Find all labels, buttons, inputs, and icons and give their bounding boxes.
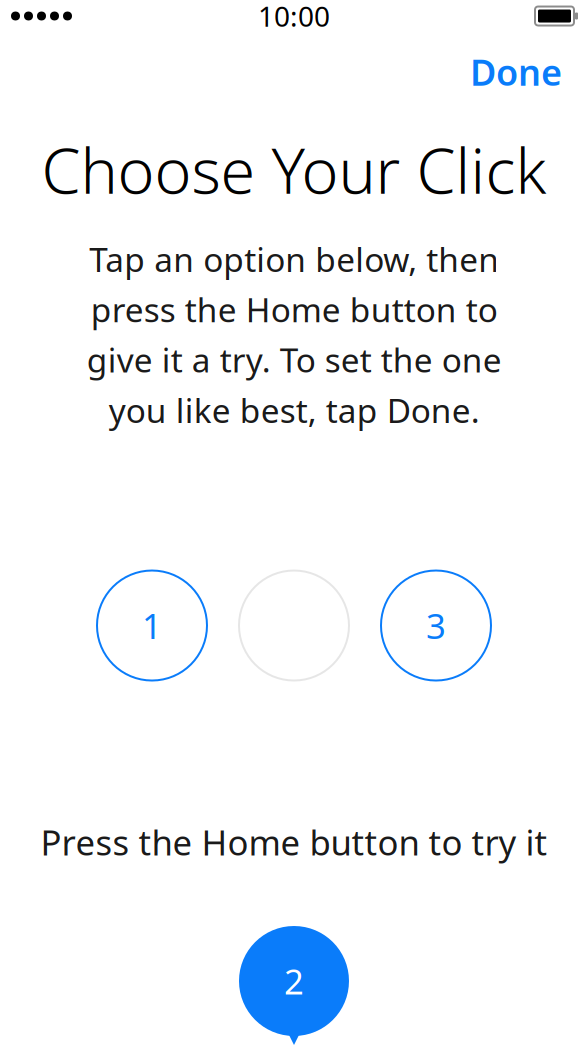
staticText: 10:00 [258,0,330,35]
staticText: 2 [284,958,304,1004]
staticText: 3 [426,602,446,648]
staticText: Press the Home button to try it [40,819,547,865]
staticText: 1 [142,602,162,648]
button[interactable]: Click option 3 [381,570,491,680]
button[interactable]: Done [456,40,576,104]
button[interactable]: Click option 2 [239,570,349,680]
staticText: Done [470,48,562,96]
button[interactable]: Click option 1 [97,570,207,680]
staticText: Tap an option below, then press the Home… [86,237,501,432]
staticText: Choose Your Click [41,128,546,211]
